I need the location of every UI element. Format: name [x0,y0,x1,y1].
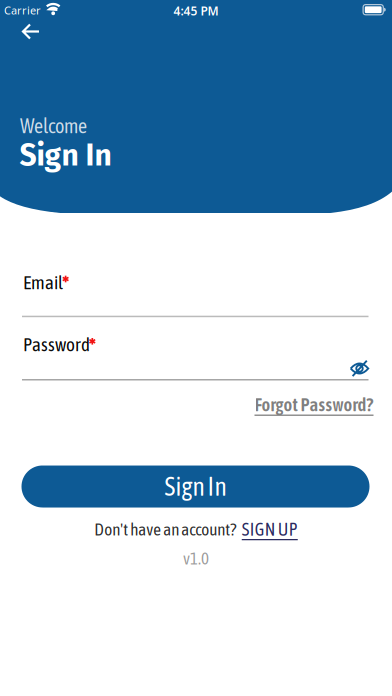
staticText: Email [23,271,63,293]
staticText: Sign In [19,137,111,173]
staticText: Forgot Password? [254,394,373,415]
button[interactable]: Sign In [21,465,369,507]
staticText: Sign In [164,472,226,501]
button[interactable] [22,24,40,39]
staticText: Carrier [4,3,41,18]
button[interactable]: Forgot Password? [254,394,373,415]
staticText: SIGN UP [242,519,298,540]
button[interactable]: SIGN UP [242,519,298,540]
staticText: v1.0 [183,548,209,568]
staticText: 4:45 PM [173,3,218,19]
button[interactable] [350,360,369,376]
staticText: Password [23,333,90,355]
staticText: Don't have an account? [94,520,236,539]
staticText: Welcome [20,114,87,137]
